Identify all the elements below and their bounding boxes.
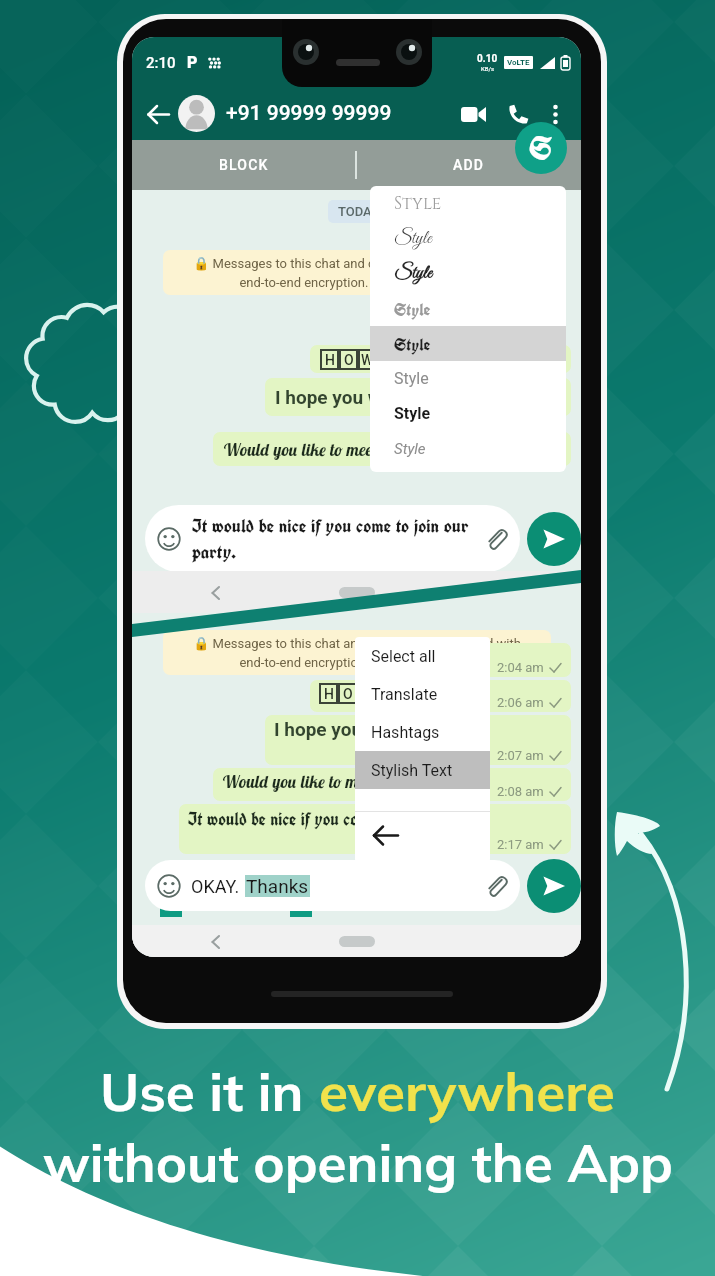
button[interactable]: Stylish Text [515,122,567,174]
staticText: Stylish Text [371,761,453,780]
button[interactable]: BLOCK [132,140,355,190]
staticText: 2:10 [146,54,176,72]
button[interactable]: Send [527,859,581,913]
button[interactable]: Style [370,291,566,326]
button[interactable]: Emoji [157,527,181,551]
staticText: ADD [453,157,485,173]
button[interactable]: Send [527,512,581,566]
button[interactable]: Hashtags [355,713,490,751]
button[interactable]: Emoji [157,874,181,898]
staticText: E [427,686,435,702]
staticText: I hope you will be there. [274,718,477,740]
button[interactable]: Stylish Text [355,751,490,789]
staticText: I hope you will be there. [275,386,478,408]
staticText: BLOCK [219,157,269,173]
button[interactable]: Call [501,97,535,131]
staticText: everywhere [319,1058,615,1125]
staticText: It would be nice if you come to join our… [192,513,478,565]
staticText: 🔒 Messages to this chat and calls are no… [193,256,521,290]
staticText: 2:06 am [497,695,544,710]
staticText: O [343,686,353,702]
staticText: E [428,352,436,368]
staticText: Hashtags [371,723,440,742]
staticText: VoLTE [507,58,530,67]
staticText: 2:04 am [497,660,544,675]
button[interactable]: More options [540,99,570,129]
button[interactable]: ADD [357,140,581,190]
staticText: Would you like to meet me today? [222,771,448,792]
staticText: H [325,352,335,368]
staticText: R [407,686,416,702]
staticText: Style [394,227,432,251]
button[interactable]: Style [370,221,566,256]
staticText: 2:08 am [497,784,544,799]
staticText: TODAY [338,204,379,219]
staticText: R [408,352,417,368]
staticText: 2:07 am [497,748,544,763]
button[interactable]: Style [370,396,566,431]
staticText: OKAY. [191,876,240,897]
staticText: Would you like to meet me today? [223,439,449,460]
button[interactable]: Back [141,97,175,131]
staticText: Select all [371,647,436,666]
button[interactable]: Translate [355,675,490,713]
staticText: S [529,127,553,169]
staticText: Thanks [246,875,309,897]
staticText: Use it in [100,1058,319,1125]
staticText: W [361,352,374,368]
button[interactable]: Style [370,361,566,396]
staticText: A [389,352,399,368]
staticText: O [344,352,354,368]
staticText: P [187,53,198,72]
staticText: Style [394,192,441,215]
staticText: 0.10 [477,53,498,65]
button[interactable]: Style [370,186,566,221]
button[interactable]: Select all [355,637,490,675]
staticText: A [388,686,398,702]
button[interactable]: Back [355,812,490,858]
staticText: Style [394,404,431,423]
staticText: Style [394,333,431,355]
staticText: +91 99999 99999 [226,101,392,126]
staticText: W [360,686,373,702]
staticText: KB/s [481,65,495,72]
staticText: 2:17 am [497,837,544,852]
button[interactable]: Video call [456,97,490,131]
staticText: Style [394,262,432,286]
staticText: Style [394,440,426,458]
button[interactable]: Style [370,326,566,361]
staticText: H [324,686,334,702]
button[interactable]: Style [370,256,566,291]
staticText: 🔒 Messages to this chat and calls are no… [193,636,521,670]
staticText: Style [394,298,431,320]
staticText: It would be nice if you come to our part… [188,807,468,831]
staticText: Translate [371,685,438,704]
staticText: without opening the App [43,1129,673,1196]
button[interactable]: Attach [484,527,508,551]
button[interactable]: Style [370,431,566,466]
staticText: Style [394,369,429,388]
button[interactable]: Attach [484,874,508,898]
